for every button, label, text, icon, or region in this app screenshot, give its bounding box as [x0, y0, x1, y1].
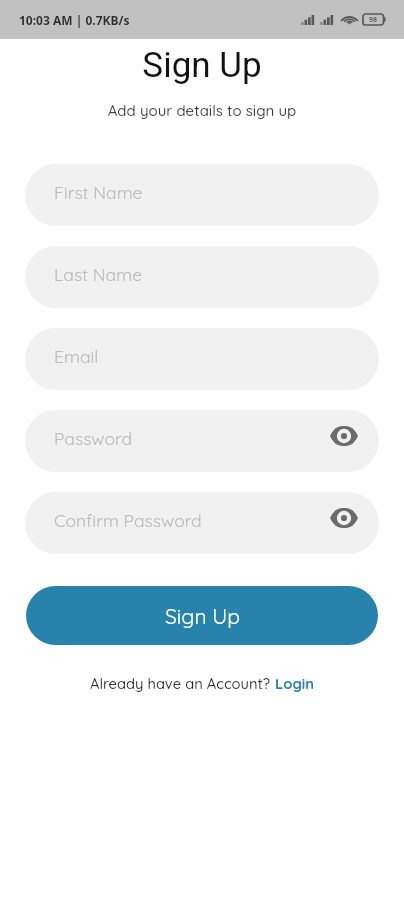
button[interactable]: Last Name [25, 246, 379, 308]
staticText: Login [275, 674, 315, 692]
staticText: 10:03 AM | 0.7KB/s [19, 12, 130, 28]
staticText: First Name [54, 181, 143, 203]
staticText: Sign Up [0, 45, 404, 86]
staticText: Password [54, 427, 133, 449]
staticText: Sign Up [165, 603, 240, 629]
button[interactable]: Confirm Password [25, 492, 379, 554]
staticText: Last Name [54, 263, 143, 285]
staticText: Add your details to sign up [0, 101, 404, 120]
button[interactable]: Email [25, 328, 379, 390]
button[interactable]: Password [25, 410, 379, 472]
staticText: Email [54, 345, 99, 367]
button[interactable]: Toggle password visibility [328, 420, 360, 452]
staticText: 98 [369, 15, 378, 25]
button[interactable]: Sign Up [26, 586, 378, 645]
button[interactable]: First Name [25, 164, 379, 226]
staticText: Already have an Account? [90, 674, 275, 692]
staticText: Confirm Password [54, 509, 202, 531]
button[interactable]: Login [275, 674, 315, 692]
button[interactable]: Toggle password visibility [328, 502, 360, 534]
